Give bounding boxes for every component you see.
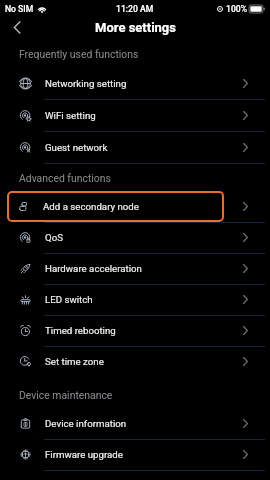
staticText: Device maintenance [19,389,113,401]
button[interactable]: Hardware acceleration [0,253,270,284]
button[interactable]: QoS [0,222,270,253]
staticText: No SIM [5,4,34,14]
staticText: Add a secondary node [43,201,139,212]
staticText: Device information [45,418,127,429]
staticText: Hardware acceleration [45,263,142,274]
staticText: Timed rebooting [45,325,116,336]
button[interactable]: Networking setting [0,67,270,99]
staticText: Set time zone [45,356,104,367]
button[interactable]: LED switch [0,284,270,315]
staticText: Firmware upgrade [45,449,123,460]
staticText: More settings [95,20,176,35]
button[interactable]: WiFi setting [0,99,270,131]
button[interactable]: Device information [0,408,270,439]
staticText: 100% [226,4,247,14]
staticText: Networking setting [45,78,127,89]
button[interactable]: Set time zone [0,346,270,377]
staticText: 11:20 AM [116,4,154,14]
staticText: Frequently used functions [19,48,139,60]
staticText: Advanced functions [19,172,111,184]
button[interactable]: Back [0,17,34,37]
staticText: LED switch [45,294,93,305]
staticText: Guest network [45,142,108,153]
button[interactable]: Firmware upgrade [0,439,270,470]
button[interactable]: Timed rebooting [0,315,270,346]
staticText: WiFi setting [45,110,96,121]
button[interactable]: Add a secondary node [7,191,224,222]
staticText: QoS [45,232,63,243]
button[interactable]: Guest network [0,131,270,163]
